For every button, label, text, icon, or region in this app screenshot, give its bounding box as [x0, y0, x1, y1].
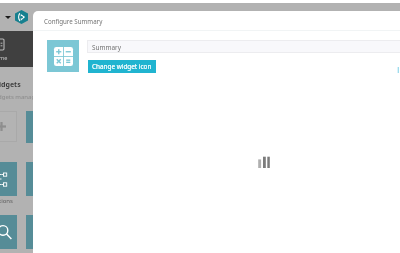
staticText: tions [0, 197, 13, 205]
staticText: Summary [92, 43, 121, 52]
button[interactable]: Lin [397, 64, 400, 76]
staticText: me [0, 54, 8, 61]
button[interactable]: Change widget icon [88, 60, 156, 73]
button[interactable]: Add widget [0, 111, 17, 142]
staticText: Configure Summary [44, 17, 103, 25]
button[interactable]: Workflow widget [0, 162, 17, 196]
staticText: Change widget icon [92, 62, 152, 71]
staticText: dgets manage [0, 93, 39, 101]
button[interactable]: Summary [87, 40, 400, 53]
staticText: idgets [0, 80, 21, 90]
button[interactable]: Change widget icon [47, 40, 79, 72]
button[interactable]: Search widget [0, 215, 17, 249]
other: Chart [258, 156, 271, 169]
button[interactable]: Open menu [5, 16, 11, 19]
